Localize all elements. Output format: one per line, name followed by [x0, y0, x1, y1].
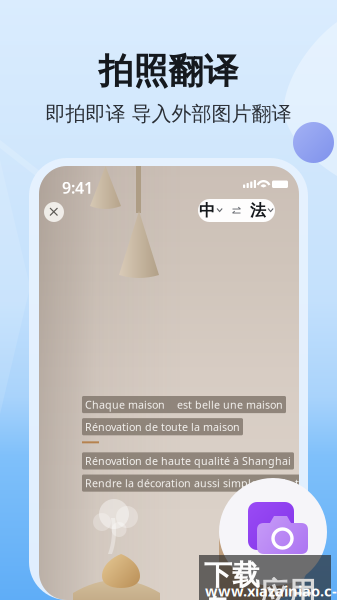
staticText: 9:41: [62, 177, 93, 198]
button[interactable]: Take photo: [219, 478, 327, 586]
button[interactable]: Close: [44, 202, 64, 222]
staticText: 下载鸟: [204, 558, 260, 600]
staticText: 即拍即译 导入外部图片翻译: [45, 102, 291, 126]
staticText: 拍照翻译: [98, 50, 238, 93]
staticText: 应用: [260, 575, 316, 600]
staticText: Rénovation de toute la maison: [85, 420, 240, 434]
staticText: Rendre la décoration aussi simple que le…: [85, 476, 312, 490]
staticText: Chaque maison est belle une maison: [85, 397, 283, 412]
button[interactable]: 法: [250, 201, 274, 220]
staticText: 法: [250, 201, 266, 220]
button[interactable]: 中: [199, 201, 223, 220]
staticText: 中: [199, 201, 215, 220]
staticText: www.xiazainiao.com: [205, 581, 337, 600]
staticText: Rénovation de haute qualité à Shanghai: [85, 454, 291, 468]
